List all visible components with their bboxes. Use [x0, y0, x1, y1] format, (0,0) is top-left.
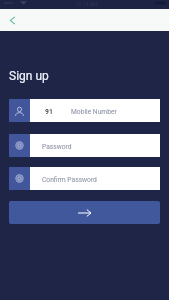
staticText: Password [42, 143, 72, 151]
staticText: Sign up [9, 69, 49, 83]
button[interactable]: Back [3, 11, 21, 29]
staticText: 91 [45, 108, 53, 116]
button[interactable]: Continue [9, 201, 160, 224]
button[interactable]: Password [9, 134, 160, 157]
button[interactable]: Confirm Password [9, 167, 160, 190]
staticText: Confirm Password [42, 176, 97, 184]
staticText: 10:15 AM [75, 1, 98, 7]
button[interactable]: 91 [9, 99, 160, 122]
staticText: Mobile Number [71, 108, 117, 116]
